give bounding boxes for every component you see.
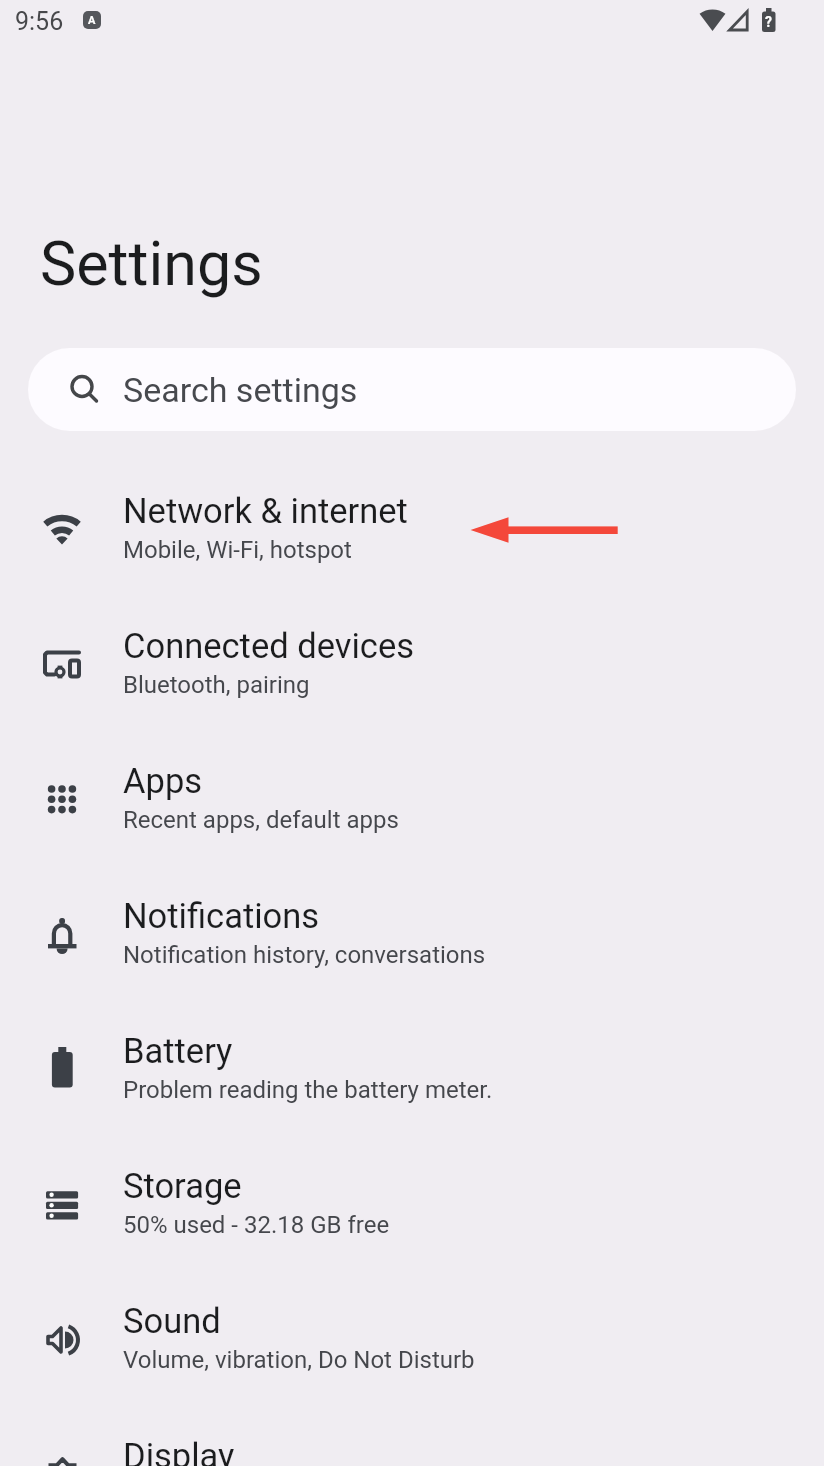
staticText: A bbox=[88, 14, 96, 27]
staticText: Notifications bbox=[123, 896, 320, 936]
staticText: Storage bbox=[123, 1166, 242, 1206]
button[interactable]: Apps bbox=[0, 730, 824, 865]
button[interactable]: Network & internet bbox=[0, 460, 824, 595]
staticText: 50% used - 32.18 GB free bbox=[123, 1211, 390, 1239]
staticText: Mobile, Wi-Fi, hotspot bbox=[123, 536, 352, 564]
button[interactable]: Display bbox=[0, 1405, 824, 1466]
staticText: Network & internet bbox=[123, 491, 408, 531]
staticText: Display bbox=[123, 1436, 235, 1466]
staticText: Connected devices bbox=[123, 626, 414, 666]
staticText: Apps bbox=[123, 761, 203, 801]
staticText: Search settings bbox=[123, 370, 358, 410]
button[interactable]: Notifications bbox=[0, 865, 824, 1000]
staticText: Volume, vibration, Do Not Disturb bbox=[123, 1346, 475, 1374]
button[interactable]: Battery bbox=[0, 1000, 824, 1135]
button[interactable]: Storage bbox=[0, 1135, 824, 1270]
button[interactable]: Connected devices bbox=[0, 595, 824, 730]
button[interactable]: Sound bbox=[0, 1270, 824, 1405]
staticText: Sound bbox=[123, 1301, 221, 1341]
staticText: Notification history, conversations bbox=[123, 941, 486, 969]
staticText: Problem reading the battery meter. bbox=[123, 1076, 493, 1104]
staticText: Settings bbox=[40, 228, 263, 299]
staticText: ? bbox=[765, 14, 772, 30]
staticText: 9:56 bbox=[15, 7, 64, 36]
staticText: Recent apps, default apps bbox=[123, 806, 399, 834]
button[interactable]: Search settings bbox=[28, 348, 796, 431]
staticText: Battery bbox=[123, 1031, 233, 1071]
staticText: Bluetooth, pairing bbox=[123, 671, 310, 699]
